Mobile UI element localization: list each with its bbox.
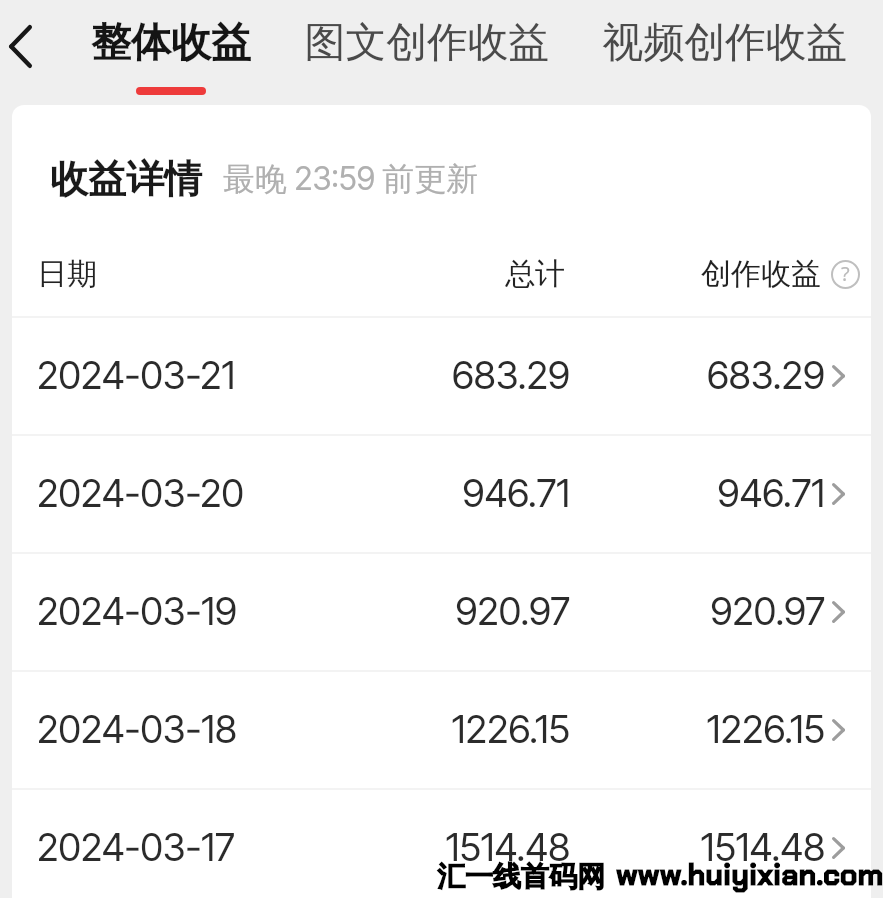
staticText: 1226.15 (370, 706, 570, 753)
staticText: 2024-03-18 (37, 706, 237, 753)
button[interactable]: 视频创作收益 (598, 17, 852, 103)
staticText: 创作收益 (701, 255, 821, 293)
staticText: www.huiyixian.com (616, 855, 883, 894)
staticText: 2024-03-21 (37, 352, 236, 399)
button[interactable]: Help (830, 259, 860, 289)
button[interactable]: 图文创作收益 (301, 17, 553, 103)
button[interactable]: 2024-03-17 (12, 789, 871, 898)
staticText: 946.71 (370, 470, 570, 517)
button[interactable]: Back (0, 7, 41, 86)
staticText: 946.71 (625, 470, 825, 517)
staticText: 日期 (37, 255, 97, 293)
staticText: 2024-03-20 (37, 470, 244, 517)
staticText: 2024-03-17 (37, 824, 235, 871)
staticText: 1514.48 (625, 824, 825, 871)
button[interactable]: 2024-03-19 (12, 553, 871, 670)
staticText: 920.97 (625, 588, 825, 635)
staticText: 总计 (505, 255, 565, 293)
staticText: 920.97 (370, 588, 570, 635)
staticText: 1514.48 (370, 824, 570, 871)
staticText: 1226.15 (625, 706, 825, 753)
button[interactable]: 整体收益 (84, 17, 258, 103)
staticText: ? (841, 260, 850, 287)
staticText: 视频创作收益 (598, 17, 852, 68)
staticText: 最晚 23:59 前更新 (223, 159, 479, 200)
staticText: 683.29 (370, 352, 570, 399)
staticText: 图文创作收益 (301, 17, 553, 68)
staticText: 683.29 (625, 352, 825, 399)
button[interactable]: 2024-03-21 (12, 317, 871, 434)
staticText: 汇一线首码网 (437, 859, 605, 894)
staticText: 2024-03-19 (37, 588, 237, 635)
staticText: 整体收益 (84, 17, 258, 67)
staticText: 收益详情 (50, 155, 202, 203)
button[interactable]: 2024-03-18 (12, 671, 871, 788)
button[interactable]: 2024-03-20 (12, 435, 871, 552)
